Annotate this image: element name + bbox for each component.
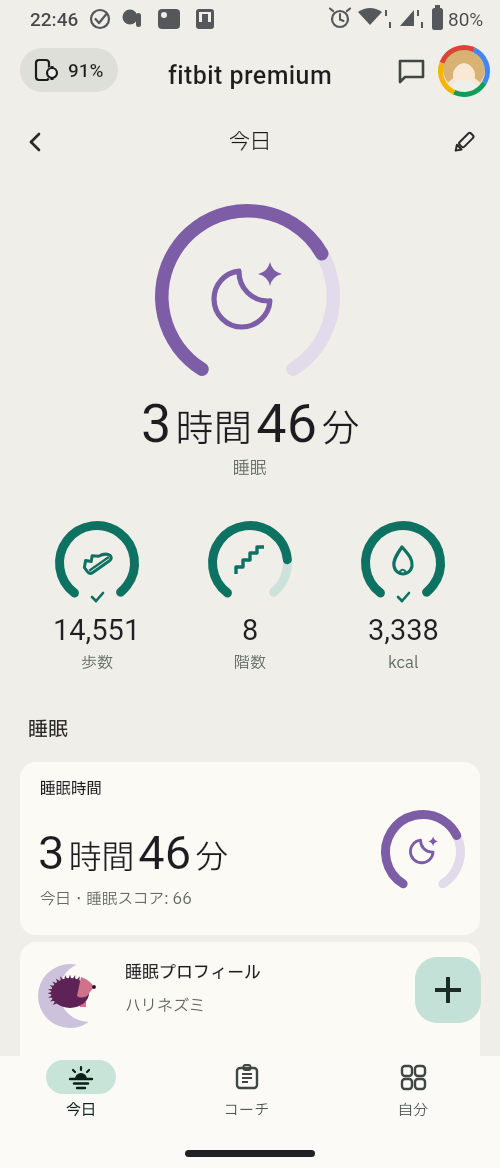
- staticText: 歩数: [81, 651, 114, 675]
- button[interactable]: 睡眠プロフィール: [20, 942, 480, 1056]
- button[interactable]: 91%: [34, 48, 104, 92]
- staticText: コーチ: [224, 1099, 270, 1121]
- button[interactable]: [396, 56, 426, 86]
- staticText: 3,338: [368, 613, 439, 647]
- staticText: 睡眠時間: [40, 778, 103, 801]
- staticText: kcal: [388, 651, 419, 675]
- staticText: fitbit premium: [168, 61, 333, 90]
- staticText: 80%: [448, 8, 484, 30]
- staticText: 睡眠: [233, 456, 267, 481]
- button[interactable]: コーチ: [197, 1060, 297, 1122]
- staticText: 睡眠: [28, 715, 68, 745]
- staticText: 3 時間 46 分: [38, 825, 229, 883]
- staticText: 今日: [66, 1099, 97, 1121]
- staticText: ハリネズミ: [125, 994, 206, 1018]
- staticText: 今日・睡眠スコア: 66: [40, 888, 193, 911]
- staticText: 自分: [398, 1099, 429, 1121]
- button[interactable]: [450, 128, 478, 156]
- button[interactable]: [46, 1060, 116, 1094]
- staticText: 今日: [229, 127, 271, 158]
- button[interactable]: 睡眠時間: [20, 762, 480, 935]
- staticText: 14,551: [53, 613, 141, 647]
- staticText: 91%: [68, 59, 104, 81]
- button[interactable]: [22, 128, 50, 156]
- staticText: 睡眠プロフィール: [125, 960, 261, 985]
- button[interactable]: [438, 45, 490, 97]
- button[interactable]: 自分: [363, 1060, 463, 1122]
- staticText: 8: [242, 613, 259, 647]
- staticText: 3 時間 46 分: [141, 392, 360, 456]
- button[interactable]: [415, 957, 481, 1023]
- staticText: 22:46: [30, 8, 79, 30]
- staticText: 階数: [234, 651, 267, 675]
